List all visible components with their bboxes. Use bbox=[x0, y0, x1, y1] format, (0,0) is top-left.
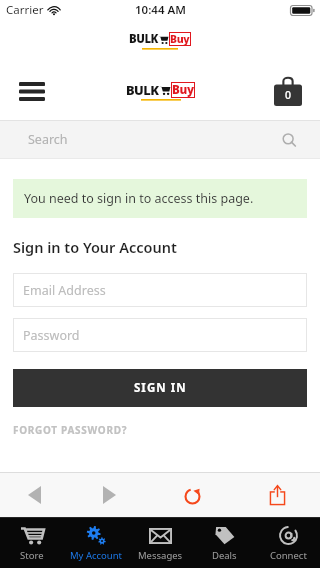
button[interactable]: Share bbox=[235, 473, 320, 517]
staticText: BULK bbox=[129, 31, 158, 47]
button[interactable]: Messages bbox=[128, 518, 192, 568]
button[interactable]: Back bbox=[0, 473, 68, 517]
button[interactable]: Forward bbox=[68, 473, 150, 517]
button[interactable]: Reload bbox=[150, 473, 235, 517]
staticText: Carrier bbox=[6, 2, 44, 18]
staticText: Store bbox=[20, 549, 44, 562]
staticText: Buy bbox=[170, 32, 190, 46]
staticText: 10:44 AM bbox=[135, 2, 186, 18]
button[interactable]: Search bbox=[0, 121, 320, 158]
staticText: BULK bbox=[126, 81, 159, 98]
staticText: FORGOT PASSWORD? bbox=[13, 423, 128, 437]
button[interactable]: Shopping cart, 0 items bbox=[266, 69, 310, 113]
staticText: Messages bbox=[138, 549, 183, 562]
button[interactable]: Deals bbox=[192, 518, 256, 568]
staticText: Email Address bbox=[23, 282, 106, 299]
staticText: You need to sign in to access this page. bbox=[24, 190, 254, 207]
staticText: My Account bbox=[70, 549, 123, 562]
staticText: Sign in to Your Account bbox=[13, 237, 177, 257]
button[interactable]: Password bbox=[13, 318, 307, 352]
staticText: 0 bbox=[285, 88, 292, 102]
button[interactable]: Menu bbox=[10, 69, 54, 113]
staticText: SIGN IN bbox=[134, 380, 187, 396]
staticText: Buy bbox=[172, 82, 194, 98]
staticText: Password bbox=[23, 327, 80, 344]
other: Search bbox=[278, 129, 300, 151]
button[interactable]: Connect bbox=[256, 518, 320, 568]
staticText: Search bbox=[28, 131, 68, 148]
button[interactable]: My Account bbox=[64, 518, 128, 568]
staticText: Connect bbox=[270, 549, 307, 562]
button[interactable]: SIGN IN bbox=[13, 369, 307, 407]
button[interactable]: Email Address bbox=[13, 273, 307, 307]
staticText: Deals bbox=[212, 549, 237, 562]
button[interactable]: Store bbox=[0, 518, 64, 568]
button[interactable]: FORGOT PASSWORD? bbox=[13, 423, 128, 437]
